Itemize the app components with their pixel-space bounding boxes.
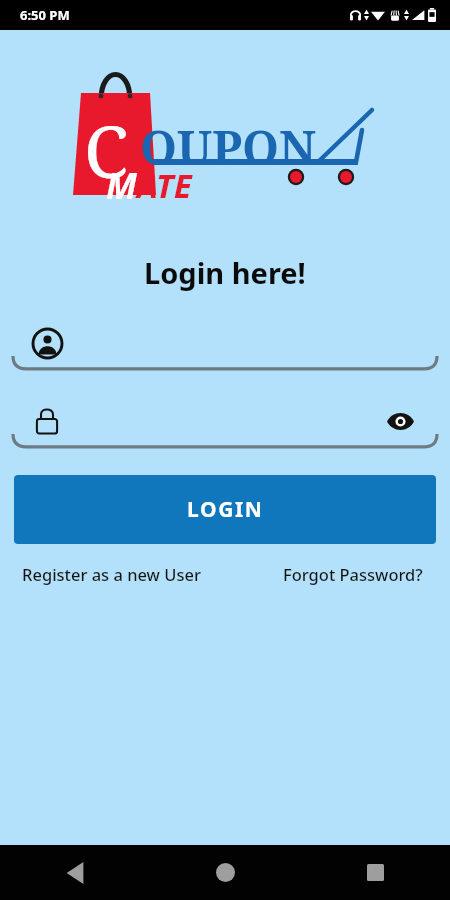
staticText: M [106, 162, 137, 210]
button[interactable]: Forgot Password? [283, 563, 423, 585]
button[interactable]: Username [0, 314, 450, 372]
staticText: OUPON [140, 115, 317, 179]
staticText: Login here! [144, 253, 306, 292]
button[interactable]: Recent apps [300, 845, 450, 900]
staticText: Register as a new User [22, 563, 201, 585]
button[interactable]: Back [0, 845, 150, 900]
staticText: C [84, 101, 129, 199]
button[interactable]: Home [150, 845, 300, 900]
button[interactable]: Show password [382, 403, 418, 439]
button[interactable]: LOGIN [14, 475, 436, 544]
staticText: LOGIN [187, 495, 264, 524]
button[interactable]: Register as a new User [22, 563, 201, 585]
staticText: ATE [137, 163, 192, 208]
staticText: 6:50 PM [20, 6, 70, 24]
button[interactable]: Password [0, 392, 450, 450]
other: Username [33, 329, 62, 358]
staticText: Forgot Password? [283, 563, 423, 585]
other: Password [35, 407, 59, 435]
